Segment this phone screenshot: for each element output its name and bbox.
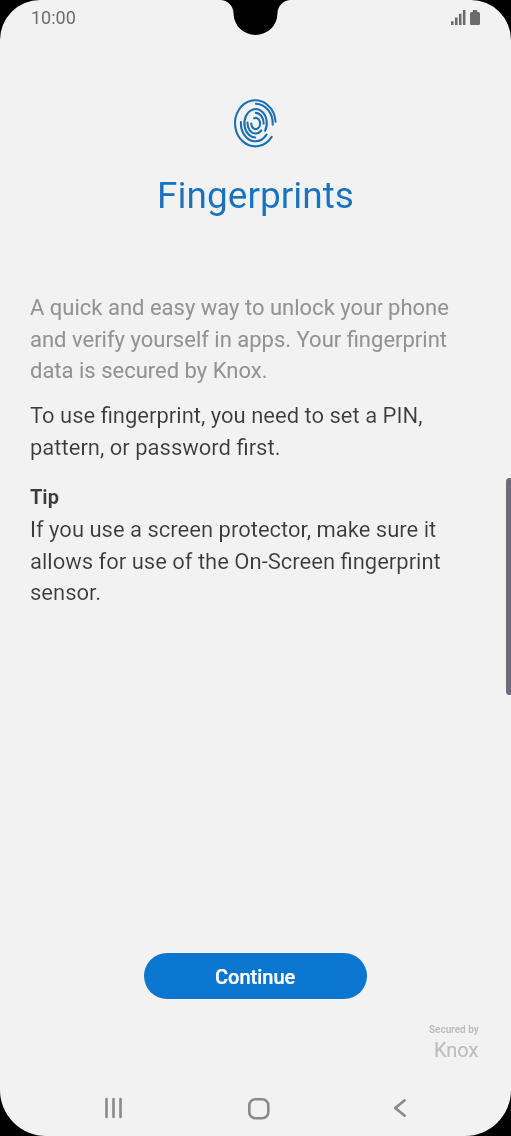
staticText: To use fingerprint, you need to set a PI…: [30, 403, 450, 460]
staticText: Secured by: [429, 1024, 479, 1036]
staticText: Knox: [434, 1038, 479, 1061]
staticText: Tip: [30, 485, 59, 508]
button[interactable]: Continue: [144, 953, 367, 999]
staticText: A quick and easy way to unlock your phon…: [30, 295, 450, 383]
staticText: Continue: [215, 965, 296, 988]
button[interactable]: Recent apps: [76, 1080, 152, 1136]
staticText: 10:00: [31, 7, 76, 28]
button[interactable]: Home: [220, 1080, 296, 1136]
button[interactable]: Back: [362, 1080, 438, 1136]
staticText: If you use a screen protector, make sure…: [30, 517, 450, 605]
staticText: Fingerprints: [0, 174, 511, 217]
